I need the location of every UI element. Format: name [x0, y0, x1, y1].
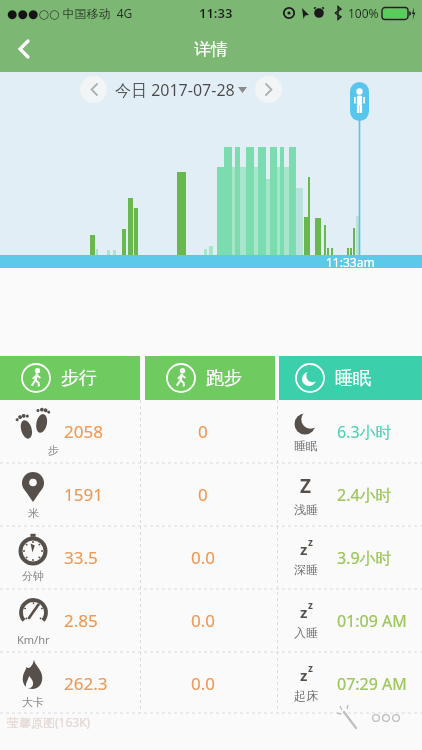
staticText: 11:33 [199, 4, 233, 22]
staticText: 睡眠 [335, 367, 371, 390]
button[interactable] [4, 30, 44, 68]
staticText: 1591 [64, 483, 103, 506]
staticText: 0.0 [191, 672, 216, 695]
button[interactable]: 睡眠 [279, 356, 422, 400]
staticText: z [308, 661, 313, 675]
staticText: 2.85 [64, 609, 98, 632]
staticText: Z [300, 473, 312, 499]
staticText: 0 [198, 420, 208, 443]
button[interactable]: 步行 [0, 356, 140, 400]
staticText: 深睡 [294, 562, 318, 577]
staticText: 米 [28, 506, 39, 520]
staticText: ●●●○○ 中国移动 4G [7, 5, 133, 21]
button[interactable]: 跑步 [145, 356, 275, 400]
staticText: 262.3 [64, 672, 108, 695]
staticText: z [308, 598, 313, 612]
staticText: 跑步 [206, 367, 242, 390]
staticText: 大卡 [22, 695, 44, 709]
button[interactable] [255, 76, 282, 103]
staticText: 详情 [194, 39, 228, 60]
staticText: 11:33am [326, 254, 375, 268]
staticText: 睡眠 [294, 438, 318, 453]
staticText: 分钟 [22, 569, 44, 583]
staticText: z [300, 539, 308, 559]
staticText: 0.0 [191, 546, 216, 569]
staticText: 3.9小时 [337, 547, 392, 569]
staticText: 01:09 AM [337, 610, 407, 632]
staticText: 0 [198, 483, 208, 506]
staticText: 浅睡 [294, 502, 318, 517]
staticText: Km/hr [17, 632, 50, 647]
staticText: 今日 2017-07-28 [115, 79, 235, 101]
staticText: 100% [348, 5, 379, 21]
staticText: 2.4小时 [337, 484, 392, 506]
staticText: 入睡 [294, 625, 318, 640]
button[interactable] [80, 76, 107, 103]
staticText: z [308, 535, 313, 549]
staticText: 莹馨原图(163K) [7, 714, 91, 730]
staticText: 步行 [61, 367, 97, 390]
staticText: 2058 [64, 420, 103, 443]
staticText: 0.0 [191, 609, 216, 632]
staticText: z [300, 602, 308, 622]
staticText: 步 [48, 443, 59, 457]
staticText: 起床 [294, 688, 318, 703]
staticText: z [300, 665, 308, 685]
staticText: 33.5 [64, 546, 98, 569]
staticText: 6.3小时 [337, 421, 392, 443]
staticText: 07:29 AM [337, 673, 407, 695]
